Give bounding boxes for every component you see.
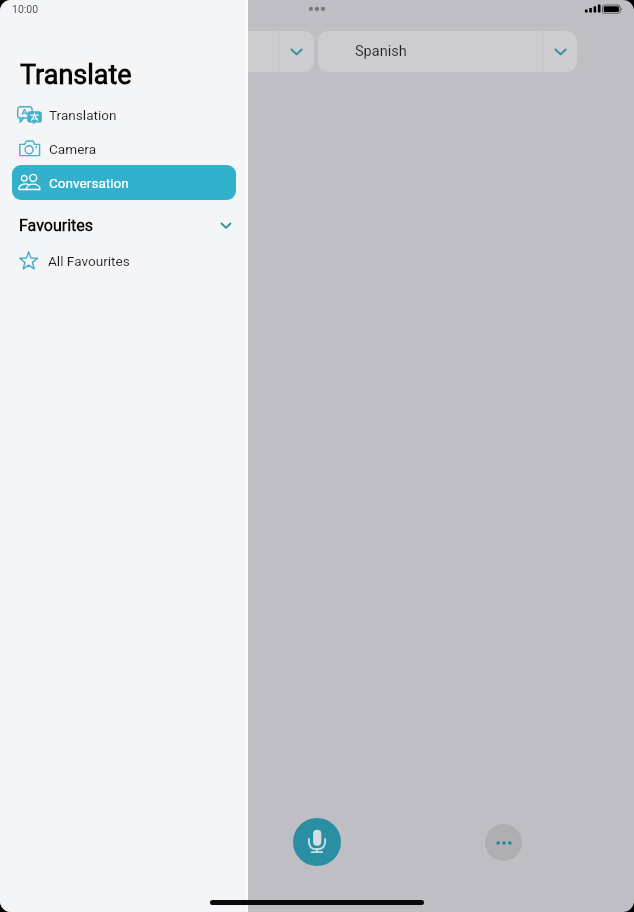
staticText: Spanish [355, 43, 407, 60]
button[interactable]: Camera [12, 131, 236, 166]
button[interactable]: Spanish [318, 31, 577, 72]
staticText: 10:00 [12, 3, 39, 15]
staticText: Translate [20, 59, 132, 91]
staticText: Camera [49, 141, 97, 157]
button[interactable]: All Favourites [0, 244, 248, 278]
button[interactable]: Translation [12, 97, 236, 132]
staticText: Favourites [19, 216, 94, 235]
staticText: Translation [49, 107, 117, 123]
button[interactable]: Favourites [0, 208, 248, 242]
button[interactable]: More options [485, 824, 522, 861]
button[interactable]: Conversation [12, 165, 236, 200]
button[interactable]: Speak [293, 818, 341, 866]
staticText: All Favourites [48, 253, 130, 269]
button[interactable]: Source language [194, 31, 314, 72]
staticText: Conversation [49, 175, 129, 191]
other: Window controls [307, 4, 327, 14]
